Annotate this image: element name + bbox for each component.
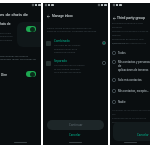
button[interactable]: Continuar [47,120,104,130]
button[interactable]: Toggle [26,71,36,77]
staticText: Mis contactos y personas de aplicaciones… [118,60,150,72]
staticText: Continuar [69,123,83,127]
staticText: hats de [0,22,11,26]
button[interactable]: Separado [46,59,106,73]
staticText: Manage inbox [52,14,73,18]
staticText: es de chats de terceros de la… [0,12,41,18]
staticText: Todos [118,51,126,55]
button[interactable]: Mis contactos y personas de aplicaciones… [112,60,150,72]
staticText: Dire [1,73,7,77]
staticText: Quiénes pueden añadirme a un grupo [112,42,150,45]
button[interactable]: Solo mis contactos [112,78,150,82]
button[interactable]: Cancelar [65,132,85,137]
staticText: Combinado [54,39,70,43]
button[interactable]: Cancelar [113,122,150,141]
button[interactable]: Toggle [26,26,36,32]
staticText: Cancelar [137,133,149,137]
staticText: Nadie [118,100,126,104]
staticText: Los mensajes de tus clientes se ven a pa… [54,64,85,73]
staticText: Esta pantalla permite a otras personas a… [112,22,150,45]
button[interactable]: Todos [112,51,150,55]
button[interactable]: Back [111,15,117,21]
staticText: stos chats aparecerán archivados [0,31,13,42]
staticText: Solo mis contactos [118,78,142,82]
button[interactable]: Nadie [112,100,150,104]
staticText: Cancelar [69,133,81,137]
button[interactable]: Combinado [46,39,106,53]
staticText: Define dónde deseas que aparezcan los ch… [47,26,97,32]
staticText: Separado [54,59,67,63]
staticText: aplicaciones de terceros mensajes recibi… [0,54,36,61]
staticText: Los ajustes de los grupos de terceros so… [112,109,150,124]
staticText: Los chats de tus cuentas aparecen juntos… [54,44,81,53]
button[interactable]: Back [45,13,51,19]
staticText: Mis contactos, excepto… [118,89,149,93]
button[interactable]: Mis contactos, excepto… [112,89,150,93]
staticText: Third party group [117,15,146,20]
